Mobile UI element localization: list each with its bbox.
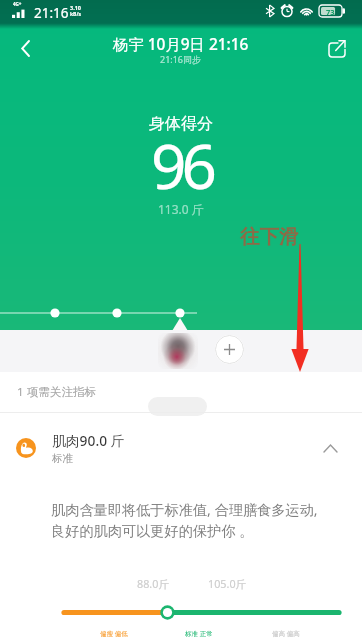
staticText: 21:16同步 [160, 53, 202, 65]
staticText: 肌肉含量即将低于标准值, 合理膳食多运动, 良好的肌肉可以更好的保护你 。 [51, 500, 346, 540]
button[interactable]: Collapse [312, 430, 348, 466]
staticText: 肌肉90.0 斤 [52, 431, 125, 450]
button[interactable]: Add user [215, 335, 244, 364]
staticText: 偏瘦 偏低 [100, 629, 128, 638]
staticText: 73 [326, 7, 335, 17]
button[interactable]: 肌肉90.0 斤 [0, 422, 362, 474]
staticText: kB/s [70, 11, 82, 18]
staticText: 标准 [52, 452, 73, 465]
button[interactable]: Share [317, 28, 357, 68]
staticText: 4G+ [13, 1, 22, 7]
staticText: 标准 正常 [185, 629, 213, 638]
staticText: 21:16 [34, 4, 69, 22]
staticText: 96 [151, 123, 212, 207]
staticText: 1 项需关注指标 [17, 384, 97, 400]
button[interactable]: Back [5, 27, 45, 67]
staticText: 105.0斤 [208, 576, 247, 591]
staticText: 3.10 [70, 4, 81, 11]
staticText: 身体得分 [149, 114, 213, 134]
button[interactable]: User avatar [158, 333, 198, 369]
staticText: 88.0斤 [137, 576, 170, 591]
staticText: 往下滑 [240, 224, 299, 249]
staticText: 杨宇 10月9日 21:16 [113, 34, 249, 55]
staticText: 偏高 偏高 [272, 629, 300, 638]
staticText: 113.0 斤 [158, 201, 204, 217]
